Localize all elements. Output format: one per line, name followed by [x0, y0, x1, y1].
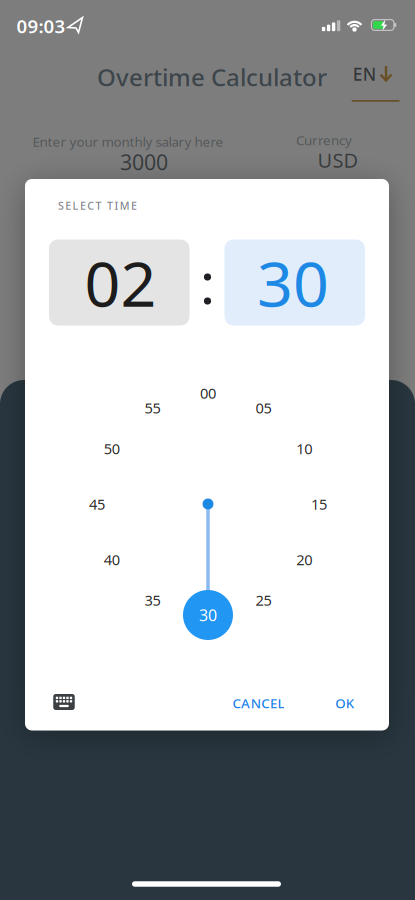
staticText: 10: [296, 439, 312, 458]
staticText: 20: [296, 550, 312, 569]
button[interactable]: 40: [92, 539, 132, 579]
button[interactable]: 50: [92, 428, 132, 468]
staticText: EN: [353, 62, 376, 85]
button[interactable]: 30: [188, 595, 228, 635]
staticText: 00: [200, 383, 216, 403]
staticText: 40: [104, 550, 120, 569]
button[interactable]: 20: [284, 539, 324, 579]
staticText: 25: [255, 590, 271, 610]
button[interactable]: 35: [132, 580, 172, 620]
button[interactable]: 00: [188, 373, 228, 413]
staticText: 3000: [120, 148, 168, 176]
staticText: 45: [89, 494, 105, 514]
staticText: USD: [317, 147, 358, 173]
button[interactable]: 05: [243, 388, 283, 428]
staticText: 30: [257, 241, 329, 324]
staticText: 05: [255, 398, 271, 418]
staticText: 50: [104, 439, 120, 458]
button[interactable]: 55: [132, 388, 172, 428]
staticText: Enter your monthly salary here: [32, 133, 223, 150]
staticText: 02: [84, 241, 156, 324]
button[interactable]: 45: [77, 484, 117, 524]
staticText: Overtime Calculator: [97, 61, 327, 93]
button[interactable]: 10: [284, 428, 324, 468]
staticText: OK: [335, 694, 354, 712]
button[interactable]: OK: [319, 681, 369, 725]
button[interactable]: 30: [224, 239, 365, 325]
staticText: 30: [199, 604, 217, 626]
button[interactable]: 25: [243, 580, 283, 620]
button[interactable]: 02: [49, 239, 189, 325]
staticText: 55: [144, 398, 160, 418]
button[interactable]: EN: [314, 42, 414, 108]
staticText: 15: [311, 494, 327, 514]
staticText: SELECT TIME: [58, 198, 137, 213]
button[interactable]: 15: [299, 484, 339, 524]
staticText: CANCEL: [232, 694, 284, 712]
staticText: Currency: [296, 131, 352, 149]
button[interactable]: CANCEL: [213, 681, 303, 725]
button[interactable]: [32, 672, 96, 732]
staticText: 35: [144, 590, 160, 610]
staticText: 09:03: [16, 14, 65, 38]
